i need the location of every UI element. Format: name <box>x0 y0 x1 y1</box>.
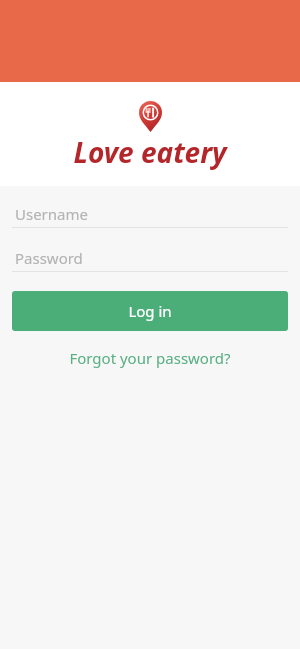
button[interactable]: Log in <box>12 291 288 331</box>
button[interactable]: Username <box>0 200 300 228</box>
staticText: Log in <box>128 301 172 321</box>
staticText: Username <box>15 204 88 224</box>
staticText: Forgot your password? <box>69 348 231 368</box>
other: Love eatery logo <box>139 101 162 132</box>
button[interactable]: Password <box>0 244 300 272</box>
staticText: Love eatery <box>73 133 227 171</box>
staticText: Password <box>15 248 83 268</box>
button[interactable]: Forgot your password? <box>0 342 300 374</box>
